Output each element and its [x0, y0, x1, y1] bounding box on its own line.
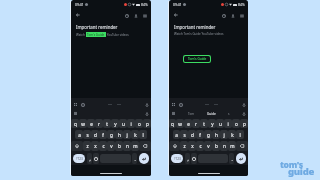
- button[interactable]: u: [216, 119, 224, 128]
- button[interactable]: History: [122, 11, 131, 20]
- button[interactable]: p: [240, 119, 248, 128]
- staticText: YouTube videos: [106, 33, 129, 37]
- button[interactable]: x: [91, 141, 99, 151]
- button[interactable]: r: [192, 119, 200, 128]
- button[interactable]: n: [123, 141, 131, 151]
- button[interactable]: t: [200, 119, 208, 128]
- button[interactable]: i: [127, 119, 135, 128]
- button[interactable]: g: [107, 130, 115, 139]
- staticText: q: [74, 121, 77, 127]
- button[interactable]: Back: [73, 10, 83, 20]
- button[interactable]: Menu: [237, 11, 246, 20]
- staticText: 84%: [141, 2, 148, 7]
- button[interactable]: q: [169, 119, 176, 128]
- button[interactable]: f: [196, 130, 204, 139]
- button[interactable]: h: [212, 130, 220, 139]
- button[interactable]: j: [220, 130, 228, 139]
- button[interactable]: i: [224, 119, 232, 128]
- button[interactable]: t: [103, 119, 111, 128]
- button[interactable]: Shift: [71, 141, 83, 151]
- button[interactable]: r: [95, 119, 103, 128]
- button[interactable]: Microphone: [143, 101, 150, 108]
- button[interactable]: ,: [87, 153, 92, 164]
- button[interactable]: Symbols: [171, 154, 183, 163]
- button[interactable]: y: [111, 119, 119, 128]
- button[interactable]: Clipboard: [72, 110, 79, 117]
- button[interactable]: Voice input: [240, 110, 247, 117]
- button[interactable]: .: [132, 153, 137, 164]
- staticText: i: [227, 121, 229, 127]
- button[interactable]: j: [123, 130, 131, 139]
- button[interactable]: e: [87, 119, 95, 128]
- button[interactable]: k: [228, 130, 236, 139]
- button[interactable]: Menu: [140, 11, 149, 20]
- button[interactable]: Tom's Guide: [183, 55, 211, 63]
- button[interactable]: Settings: [177, 101, 184, 108]
- staticText: b: [118, 143, 121, 149]
- button[interactable]: a: [75, 130, 83, 139]
- button[interactable]: Voice input: [143, 110, 150, 117]
- button[interactable]: v: [107, 141, 115, 151]
- button[interactable]: w: [79, 119, 87, 128]
- staticText: n: [126, 143, 129, 149]
- button[interactable]: Account: [131, 11, 140, 20]
- button[interactable]: d: [91, 130, 99, 139]
- staticText: w: [178, 121, 182, 127]
- button[interactable]: m: [228, 141, 236, 151]
- button[interactable]: q: [71, 119, 79, 128]
- button[interactable]: Emoji: [93, 153, 99, 164]
- button[interactable]: Toolbar: [72, 101, 79, 108]
- button[interactable]: h: [115, 130, 123, 139]
- button[interactable]: g: [204, 130, 212, 139]
- button[interactable]: .: [229, 153, 234, 164]
- button[interactable]: Account: [228, 11, 237, 20]
- button[interactable]: Shift: [169, 141, 180, 151]
- button[interactable]: c: [99, 141, 107, 151]
- button[interactable]: w: [176, 119, 184, 128]
- button[interactable]: Enter: [236, 153, 246, 164]
- button[interactable]: z: [180, 141, 188, 151]
- button[interactable]: f: [99, 130, 107, 139]
- button[interactable]: p: [143, 119, 151, 128]
- button[interactable]: y: [208, 119, 216, 128]
- button[interactable]: x: [188, 141, 196, 151]
- button[interactable]: History: [219, 11, 228, 20]
- button[interactable]: l: [236, 130, 244, 139]
- staticText: Watch Tom's Guide YouTube videos: [174, 32, 224, 36]
- button[interactable]: Toolbar: [170, 101, 177, 108]
- button[interactable]: u: [119, 119, 127, 128]
- staticText: j: [126, 132, 128, 138]
- button[interactable]: z: [83, 141, 91, 151]
- button[interactable]: m: [131, 141, 139, 151]
- button[interactable]: c: [196, 141, 204, 151]
- staticText: y: [114, 121, 117, 127]
- button[interactable]: Backspace: [139, 141, 151, 151]
- button[interactable]: ,: [185, 153, 190, 164]
- button[interactable]: Microphone: [240, 101, 247, 108]
- button[interactable]: Symbols: [73, 154, 85, 163]
- button[interactable]: Enter: [139, 153, 149, 164]
- staticText: Tom's Guide: [87, 33, 105, 37]
- button[interactable]: k: [131, 130, 139, 139]
- button[interactable]: b: [212, 141, 220, 151]
- button[interactable]: o: [232, 119, 240, 128]
- button[interactable]: a: [173, 130, 180, 139]
- button[interactable]: v: [204, 141, 212, 151]
- button[interactable]: o: [135, 119, 143, 128]
- button[interactable]: Backspace: [236, 141, 248, 151]
- button[interactable]: s: [180, 130, 188, 139]
- staticText: a: [175, 132, 178, 138]
- button[interactable]: b: [115, 141, 123, 151]
- button[interactable]: Clipboard: [170, 110, 177, 117]
- button[interactable]: Emoji: [191, 153, 197, 164]
- button[interactable]: d: [188, 130, 196, 139]
- button[interactable]: Settings: [79, 101, 86, 108]
- staticText: i: [130, 121, 132, 127]
- button[interactable]: n: [220, 141, 228, 151]
- button[interactable]: s: [83, 130, 91, 139]
- button[interactable]: l: [139, 130, 147, 139]
- button[interactable]: Back: [171, 10, 181, 20]
- button[interactable]: e: [184, 119, 192, 128]
